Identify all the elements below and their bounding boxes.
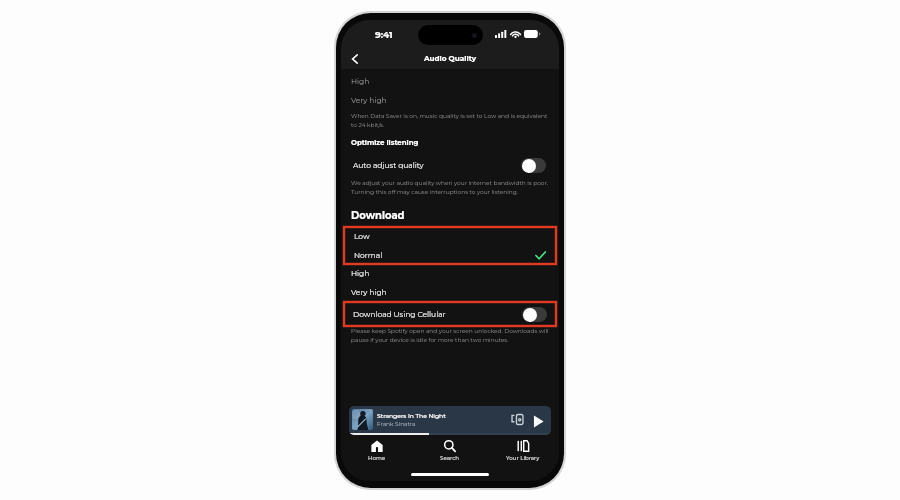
staticText: Search bbox=[440, 455, 460, 462]
button[interactable]: Very high bbox=[341, 91, 559, 110]
staticText: Download bbox=[351, 209, 405, 221]
staticText: Very high bbox=[351, 288, 387, 297]
staticText: Home bbox=[368, 455, 386, 462]
staticText: High bbox=[351, 77, 370, 86]
button[interactable]: Low bbox=[344, 227, 556, 246]
staticText: Please keep Spotify open and your screen… bbox=[351, 327, 549, 344]
button[interactable]: Download Using Cellular bbox=[344, 302, 556, 326]
staticText: 9:41 bbox=[375, 29, 393, 40]
staticText: Download Using Cellular bbox=[353, 310, 446, 319]
button[interactable]: Strangers In The Night bbox=[349, 406, 551, 435]
button[interactable]: Your Library bbox=[486, 436, 559, 465]
button[interactable]: Connect to a device bbox=[510, 412, 525, 427]
staticText: Audio Quality bbox=[424, 54, 477, 63]
staticText: Auto adjust quality bbox=[353, 161, 424, 170]
button[interactable]: Play bbox=[532, 413, 546, 427]
staticText: Frank Sinatra bbox=[377, 420, 416, 427]
button[interactable]: Auto adjust quality bbox=[341, 154, 559, 176]
button[interactable]: Back bbox=[347, 51, 363, 67]
button[interactable]: Normal bbox=[344, 246, 556, 264]
staticText: Normal bbox=[354, 251, 383, 260]
staticText: Strangers In The Night bbox=[377, 412, 446, 419]
staticText: Optimize listening bbox=[351, 138, 419, 147]
staticText: High bbox=[351, 269, 370, 278]
button[interactable]: High bbox=[341, 264, 559, 283]
button[interactable]: High bbox=[341, 72, 559, 91]
staticText: When Data Saver is on, music quality is … bbox=[351, 112, 549, 129]
staticText: We adjust your audio quality when your i… bbox=[351, 179, 549, 196]
staticText: Low bbox=[354, 232, 370, 241]
staticText: Your Library bbox=[506, 455, 540, 462]
button[interactable]: Very high bbox=[341, 283, 559, 302]
button[interactable]: Search bbox=[413, 436, 486, 465]
staticText: Very high bbox=[351, 96, 387, 105]
button[interactable]: Home bbox=[341, 436, 413, 465]
